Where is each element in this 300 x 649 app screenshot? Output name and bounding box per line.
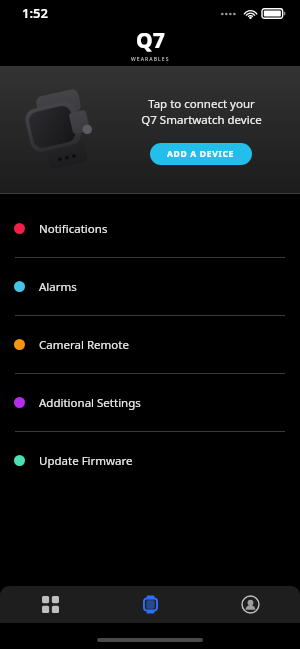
staticText: WEARABLES xyxy=(131,56,170,63)
staticText: Notifications xyxy=(39,221,108,237)
staticText: Q7 xyxy=(136,26,165,55)
button[interactable]: ADD A DEVICE xyxy=(150,143,252,165)
button[interactable]: Additional Settings xyxy=(0,374,300,431)
button[interactable]: My watch xyxy=(100,586,200,623)
staticText: 1:52 xyxy=(22,4,48,22)
button[interactable]: Notifications xyxy=(0,200,300,257)
button[interactable]: Apps xyxy=(0,586,100,623)
button[interactable]: Profile xyxy=(200,586,300,623)
staticText: ADD A DEVICE xyxy=(167,148,235,160)
button[interactable]: Alarms xyxy=(0,258,300,315)
staticText: Update Firmware xyxy=(39,453,133,469)
staticText: Cameral Remote xyxy=(39,337,129,353)
button[interactable]: Update Firmware xyxy=(0,432,300,489)
staticText: Additional Settings xyxy=(39,395,141,411)
staticText: Alarms xyxy=(39,279,77,295)
staticText: Tap to connect your Q7 Smartwatch device xyxy=(141,96,262,127)
button[interactable]: Cameral Remote xyxy=(0,316,300,373)
button[interactable]: Tap to connect your Q7 Smartwatch device xyxy=(0,66,300,194)
